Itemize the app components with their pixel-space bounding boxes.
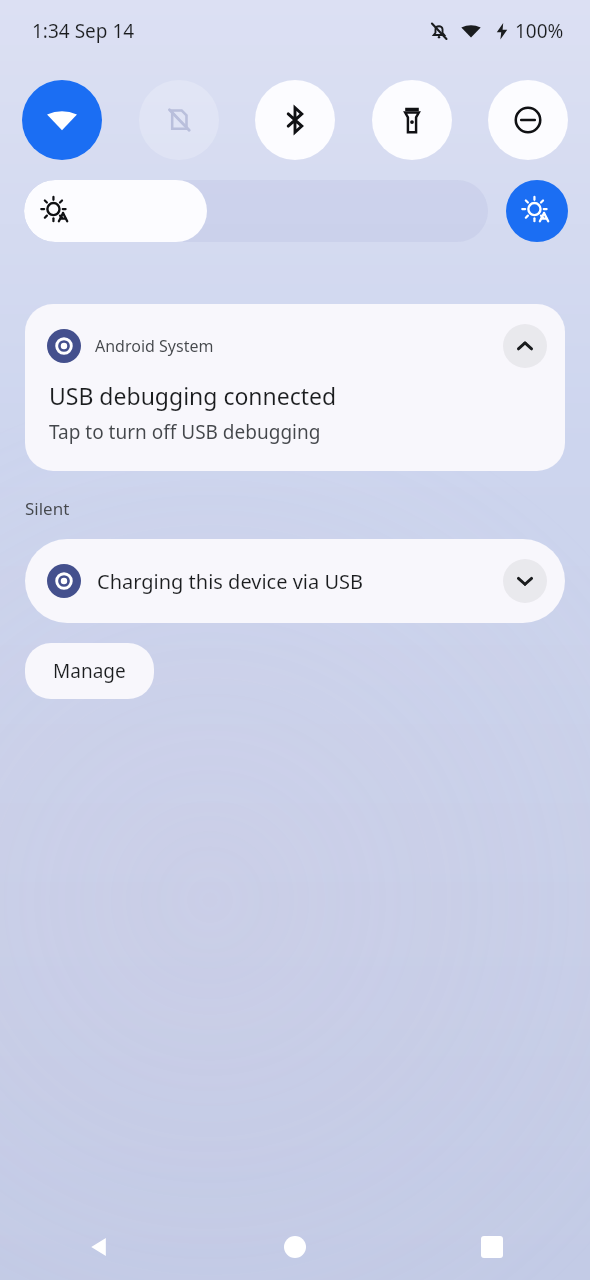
staticText: Charging this device via USB bbox=[97, 568, 364, 595]
button[interactable]: Auto brightness bbox=[506, 180, 568, 242]
button[interactable]: Home bbox=[196, 1214, 393, 1280]
staticText: 100% bbox=[515, 18, 564, 44]
staticText: Android System bbox=[95, 335, 214, 357]
button[interactable]: Expand bbox=[503, 559, 547, 603]
staticText: 1:34 Sep 14 bbox=[32, 18, 135, 44]
staticText: USB debugging connected bbox=[49, 380, 337, 411]
button[interactable]: Charging this device via USB bbox=[25, 539, 565, 623]
button[interactable]: Collapse bbox=[503, 324, 547, 368]
button[interactable]: Bluetooth bbox=[255, 80, 335, 160]
button[interactable]: Flashlight bbox=[372, 80, 452, 160]
button[interactable]: Brightness bbox=[24, 180, 488, 242]
staticText: Silent bbox=[25, 497, 70, 520]
button[interactable]: Recents bbox=[393, 1214, 590, 1280]
button[interactable]: Android System bbox=[25, 304, 565, 471]
button[interactable]: Back bbox=[0, 1214, 196, 1280]
button[interactable]: Manage bbox=[25, 643, 154, 699]
button[interactable]: Mobile data off bbox=[139, 80, 219, 160]
button[interactable]: Internet bbox=[22, 80, 102, 160]
staticText: Tap to turn off USB debugging bbox=[49, 419, 321, 445]
button[interactable]: Do not disturb bbox=[488, 80, 568, 160]
staticText: Manage bbox=[53, 658, 126, 684]
